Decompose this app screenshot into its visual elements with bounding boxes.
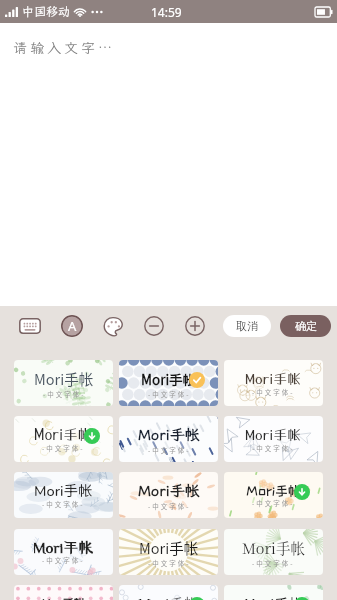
staticText: -中文字体- [148, 389, 191, 398]
staticText: -中文字体- [148, 501, 191, 510]
button[interactable]: Mori手帐 [119, 416, 218, 462]
staticText: Mori手帐 [242, 537, 305, 558]
button[interactable]: Mori手帐 [14, 416, 113, 462]
staticText: -中文字体- [43, 389, 86, 398]
button[interactable]: Mori手帐 [224, 360, 323, 406]
staticText: -中文字体- [252, 558, 295, 567]
button[interactable]: Mori手帐 [224, 416, 323, 462]
button[interactable]: Mori手帐 [119, 472, 218, 518]
staticText: -中文字体- [252, 498, 295, 507]
staticText: Mori手帐 [138, 481, 200, 501]
staticText: Mori手帐 [139, 537, 199, 558]
staticText: Mori手帐 [138, 595, 199, 600]
staticText: -中文字体- [42, 499, 85, 508]
staticText: -中文字体- [42, 443, 85, 452]
button[interactable]: Mori手帐 [14, 472, 113, 518]
button[interactable]: Increase size [181, 312, 209, 340]
staticText: -中文字体- [148, 445, 191, 454]
staticText: -中文字体- [252, 387, 295, 396]
button[interactable]: Mori手帐 [119, 529, 218, 575]
staticText: Mori手帐 [138, 425, 200, 445]
staticText: -中文字体- [148, 558, 191, 567]
button[interactable]: Keyboard [16, 312, 44, 340]
staticText: 取消 [236, 319, 258, 333]
staticText: Mori手帐 [42, 597, 85, 600]
staticText: 确定 [295, 319, 317, 333]
staticText: Mori手帐 [34, 482, 93, 499]
button[interactable]: Mori手帐 [119, 360, 218, 406]
staticText: Mori手帐 [245, 370, 302, 387]
button[interactable]: Mori手帐 [14, 529, 113, 575]
button[interactable]: Mori手帐 [224, 529, 323, 575]
button[interactable]: Mori手帐 [14, 360, 113, 406]
button[interactable]: Decrease size [140, 312, 168, 340]
button[interactable]: Mori手帐 [119, 585, 218, 600]
staticText: Mori手帐 [33, 540, 94, 555]
staticText: 请输入文字… [13, 39, 115, 57]
staticText: A [68, 317, 77, 335]
staticText: Mori手帐 [245, 426, 302, 443]
staticText: 14:59 [151, 4, 182, 20]
staticText: Mori手帐 [246, 484, 301, 498]
staticText: -中文字体- [42, 555, 85, 564]
button[interactable]: Mori手帐 [224, 585, 323, 600]
button[interactable]: 确定 [280, 315, 331, 337]
button[interactable]: Color palette [99, 312, 127, 340]
staticText: -中文字体- [252, 443, 295, 452]
button[interactable]: 取消 [223, 315, 271, 337]
staticText: 中国移动 [22, 4, 71, 20]
staticText: Mori手帐 [34, 426, 93, 443]
button[interactable]: Font [58, 312, 86, 340]
button[interactable]: Mori手帐 [224, 472, 323, 518]
staticText: Mori手帐 [34, 368, 94, 389]
staticText: Mori手帐 [141, 369, 197, 389]
staticText: Mori手帐 [244, 593, 304, 600]
button[interactable]: Mori手帐 [14, 585, 113, 600]
